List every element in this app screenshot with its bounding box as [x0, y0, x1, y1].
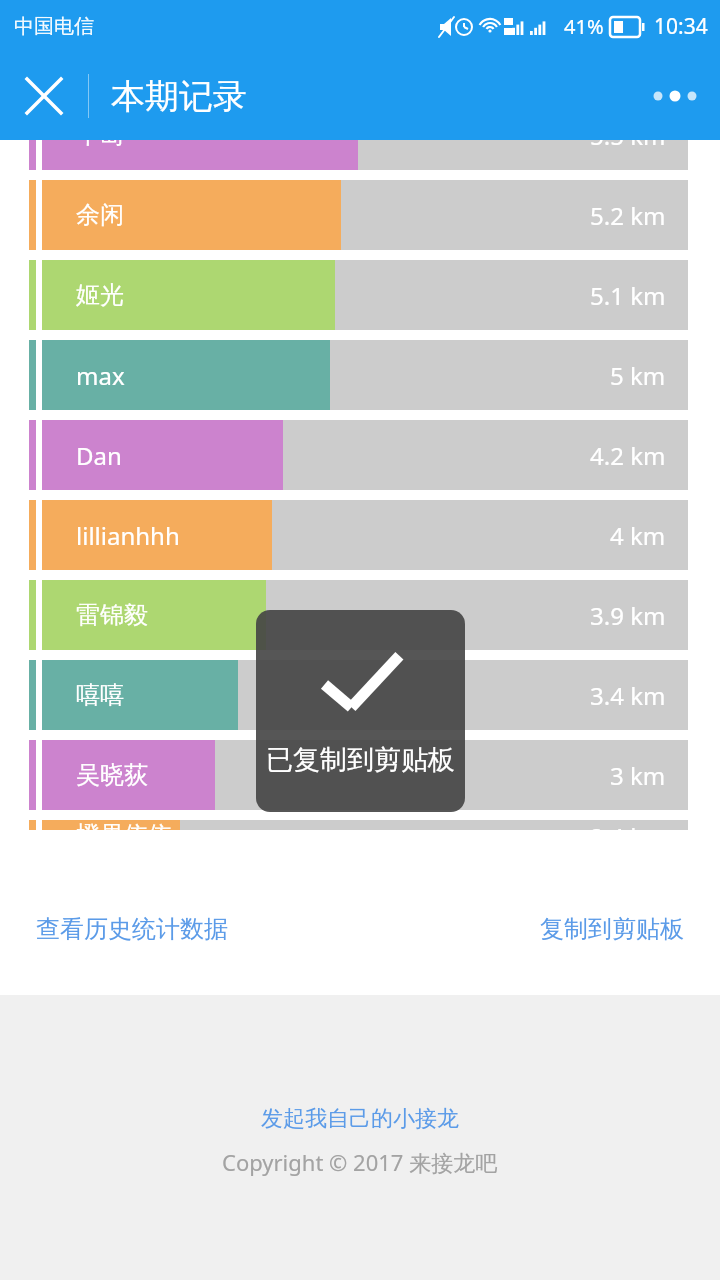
- staticText: 4.2 km: [590, 439, 666, 472]
- button[interactable]: More options: [632, 52, 720, 140]
- staticText: 吴晓荻: [76, 760, 148, 790]
- staticText: 姬光: [76, 280, 124, 310]
- button[interactable]: max: [0, 340, 720, 410]
- staticText: 5.1 km: [590, 279, 666, 312]
- staticText: 5.5 km: [590, 140, 666, 152]
- button[interactable]: 姬光: [0, 260, 720, 330]
- staticText: 3.9 km: [590, 599, 666, 632]
- staticText: 41%: [564, 13, 604, 40]
- staticText: 千岛: [76, 140, 124, 150]
- button[interactable]: 雷锦毅: [0, 580, 720, 650]
- staticText: 余闲: [76, 200, 124, 230]
- staticText: 10:34: [654, 12, 708, 41]
- staticText: max: [76, 359, 125, 392]
- button[interactable]: lillianhhh: [0, 500, 720, 570]
- staticText: 已复制到剪贴板: [266, 743, 455, 777]
- staticText: 3.4 km: [590, 679, 666, 712]
- staticText: 中国电信: [14, 14, 94, 39]
- staticText: 3 km: [610, 759, 666, 792]
- button[interactable]: Close: [0, 52, 88, 140]
- staticText: 5.2 km: [590, 199, 666, 232]
- staticText: 本期记录: [111, 75, 247, 118]
- button[interactable]: 复制到剪贴板: [540, 908, 684, 950]
- staticText: Copyright © 2017 来接龙吧: [222, 1147, 498, 1177]
- staticText: Dan: [76, 439, 122, 472]
- button[interactable]: 嘻嘻: [0, 660, 720, 730]
- button[interactable]: 发起我自己的小接龙: [249, 1099, 471, 1139]
- staticText: 嘻嘻: [76, 680, 124, 710]
- staticText: 橙果依依: [76, 820, 172, 830]
- staticText: 4 km: [610, 519, 666, 552]
- button[interactable]: 千岛: [0, 140, 720, 170]
- staticText: 雷锦毅: [76, 600, 148, 630]
- staticText: 发起我自己的小接龙: [261, 1105, 459, 1133]
- staticText: 2.4 km: [590, 820, 666, 830]
- button[interactable]: 吴晓荻: [0, 740, 720, 810]
- staticText: lillianhhh: [76, 519, 180, 552]
- button[interactable]: 余闲: [0, 180, 720, 250]
- staticText: 查看历史统计数据: [36, 914, 228, 944]
- button[interactable]: Dan: [0, 420, 720, 490]
- staticText: 5 km: [610, 359, 666, 392]
- button[interactable]: 橙果依依: [0, 820, 720, 830]
- staticText: 复制到剪贴板: [540, 914, 684, 944]
- button[interactable]: 查看历史统计数据: [36, 908, 228, 950]
